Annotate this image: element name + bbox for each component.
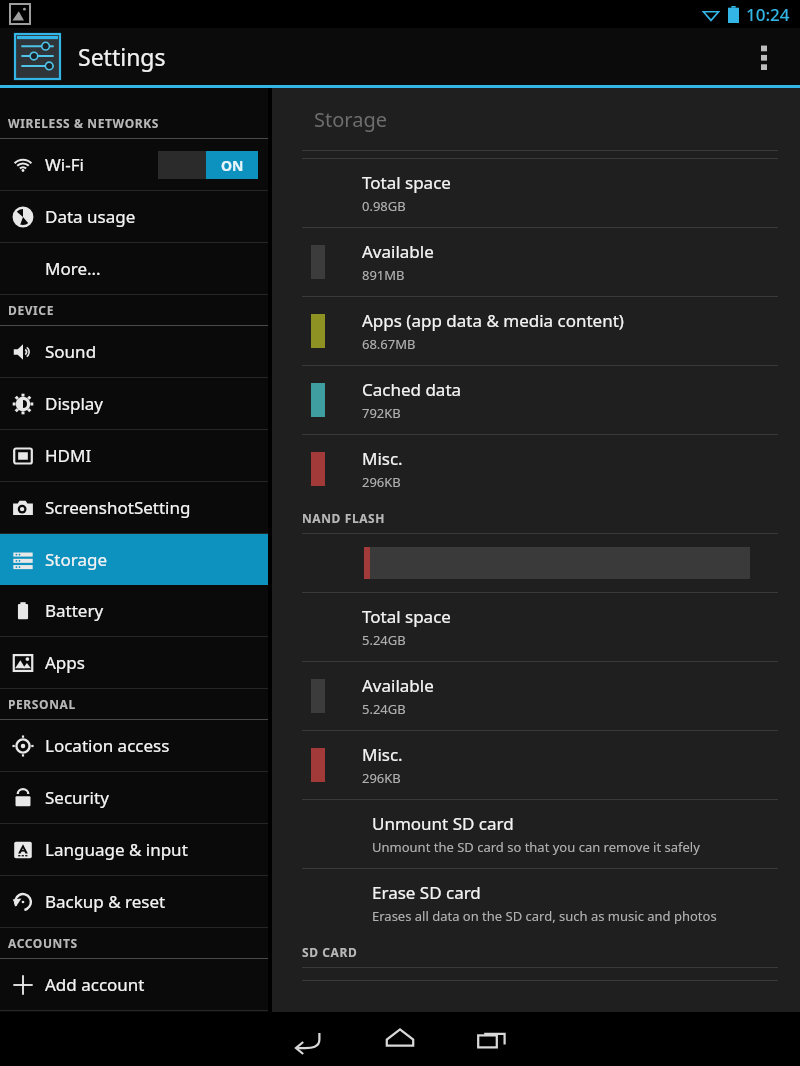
staticText: Erase SD card (372, 881, 481, 904)
staticText: Unmount SD card (372, 812, 514, 835)
staticText: Security (45, 786, 109, 809)
staticText: Display (45, 392, 103, 415)
staticText: ACCOUNTS (8, 935, 78, 951)
staticText: Available (362, 240, 434, 263)
staticText: 296KB (362, 769, 401, 787)
staticText: Erases all data on the SD card, such as … (372, 907, 717, 925)
button[interactable]: Apps (0, 637, 268, 688)
button[interactable]: Sound (0, 326, 268, 377)
staticText: Add account (45, 973, 145, 996)
staticText: 68.67MB (362, 335, 416, 353)
button[interactable]: Available (272, 228, 800, 296)
staticText: Language & input (45, 838, 188, 861)
staticText: Total space (362, 605, 451, 628)
staticText: Misc. (362, 447, 403, 470)
staticText: 5.24GB (362, 700, 406, 718)
staticText: Wi-Fi (45, 153, 84, 176)
button[interactable]: Backup & reset (0, 876, 268, 927)
staticText: DEVICE (8, 302, 54, 318)
button[interactable]: Misc. (272, 435, 800, 503)
staticText: ON (221, 156, 244, 175)
button[interactable]: ON (158, 151, 258, 179)
staticText: ScreenshotSetting (45, 496, 191, 519)
staticText: Battery (45, 599, 104, 622)
staticText: More... (45, 257, 101, 280)
button[interactable]: Display (0, 378, 268, 429)
staticText: WIRELESS & NETWORKS (8, 115, 159, 131)
staticText: Misc. (362, 743, 403, 766)
staticText: Apps (45, 651, 85, 674)
button[interactable]: HDMI (0, 430, 268, 481)
button[interactable]: Available (272, 662, 800, 730)
button[interactable]: Back (264, 1012, 352, 1066)
staticText: Backup & reset (45, 890, 166, 913)
button[interactable]: Unmount SD card (272, 800, 800, 868)
staticText: Total space (362, 171, 451, 194)
staticText: Location access (45, 734, 170, 757)
button[interactable]: Total space (272, 159, 800, 227)
staticText: Unmount the SD card so that you can remo… (372, 838, 700, 856)
staticText: 891MB (362, 266, 405, 284)
button[interactable]: Storage (0, 534, 268, 585)
staticText: Settings (78, 41, 166, 72)
staticText: PERSONAL (8, 696, 76, 712)
button[interactable]: Location access (0, 720, 268, 771)
button[interactable]: Settings app icon (15, 34, 60, 79)
button[interactable]: Misc. (272, 731, 800, 799)
staticText: 0.98GB (362, 197, 406, 215)
button[interactable]: Total space (272, 593, 800, 661)
button[interactable]: Battery (0, 585, 268, 636)
staticText: 10:24 (746, 3, 790, 26)
staticText: Sound (45, 340, 97, 363)
button[interactable]: More options (744, 37, 784, 77)
button[interactable]: Add account (0, 959, 268, 1010)
button[interactable]: ScreenshotSetting (0, 482, 268, 533)
button[interactable]: More... (0, 243, 268, 294)
staticText: Available (362, 674, 434, 697)
button[interactable]: Home (356, 1012, 444, 1066)
button[interactable]: Recent apps (448, 1012, 536, 1066)
staticText: Data usage (45, 205, 136, 228)
button[interactable]: Wi-Fi (0, 139, 268, 190)
button[interactable]: Security (0, 772, 268, 823)
staticText: Storage (314, 106, 387, 133)
button[interactable]: Cached data (272, 366, 800, 434)
staticText: Storage (45, 548, 108, 571)
button[interactable]: Language & input (0, 824, 268, 875)
staticText: 792KB (362, 404, 401, 422)
staticText: HDMI (45, 444, 92, 467)
staticText: 296KB (362, 473, 401, 491)
staticText: NAND FLASH (302, 510, 386, 526)
staticText: Apps (app data & media content) (362, 309, 624, 332)
staticText: 5.24GB (362, 631, 406, 649)
staticText: Cached data (362, 378, 462, 401)
staticText: SD CARD (302, 944, 358, 960)
button[interactable]: Apps (app data & media content) (272, 297, 800, 365)
button[interactable]: Erase SD card (272, 869, 800, 937)
button[interactable]: Data usage (0, 191, 268, 242)
